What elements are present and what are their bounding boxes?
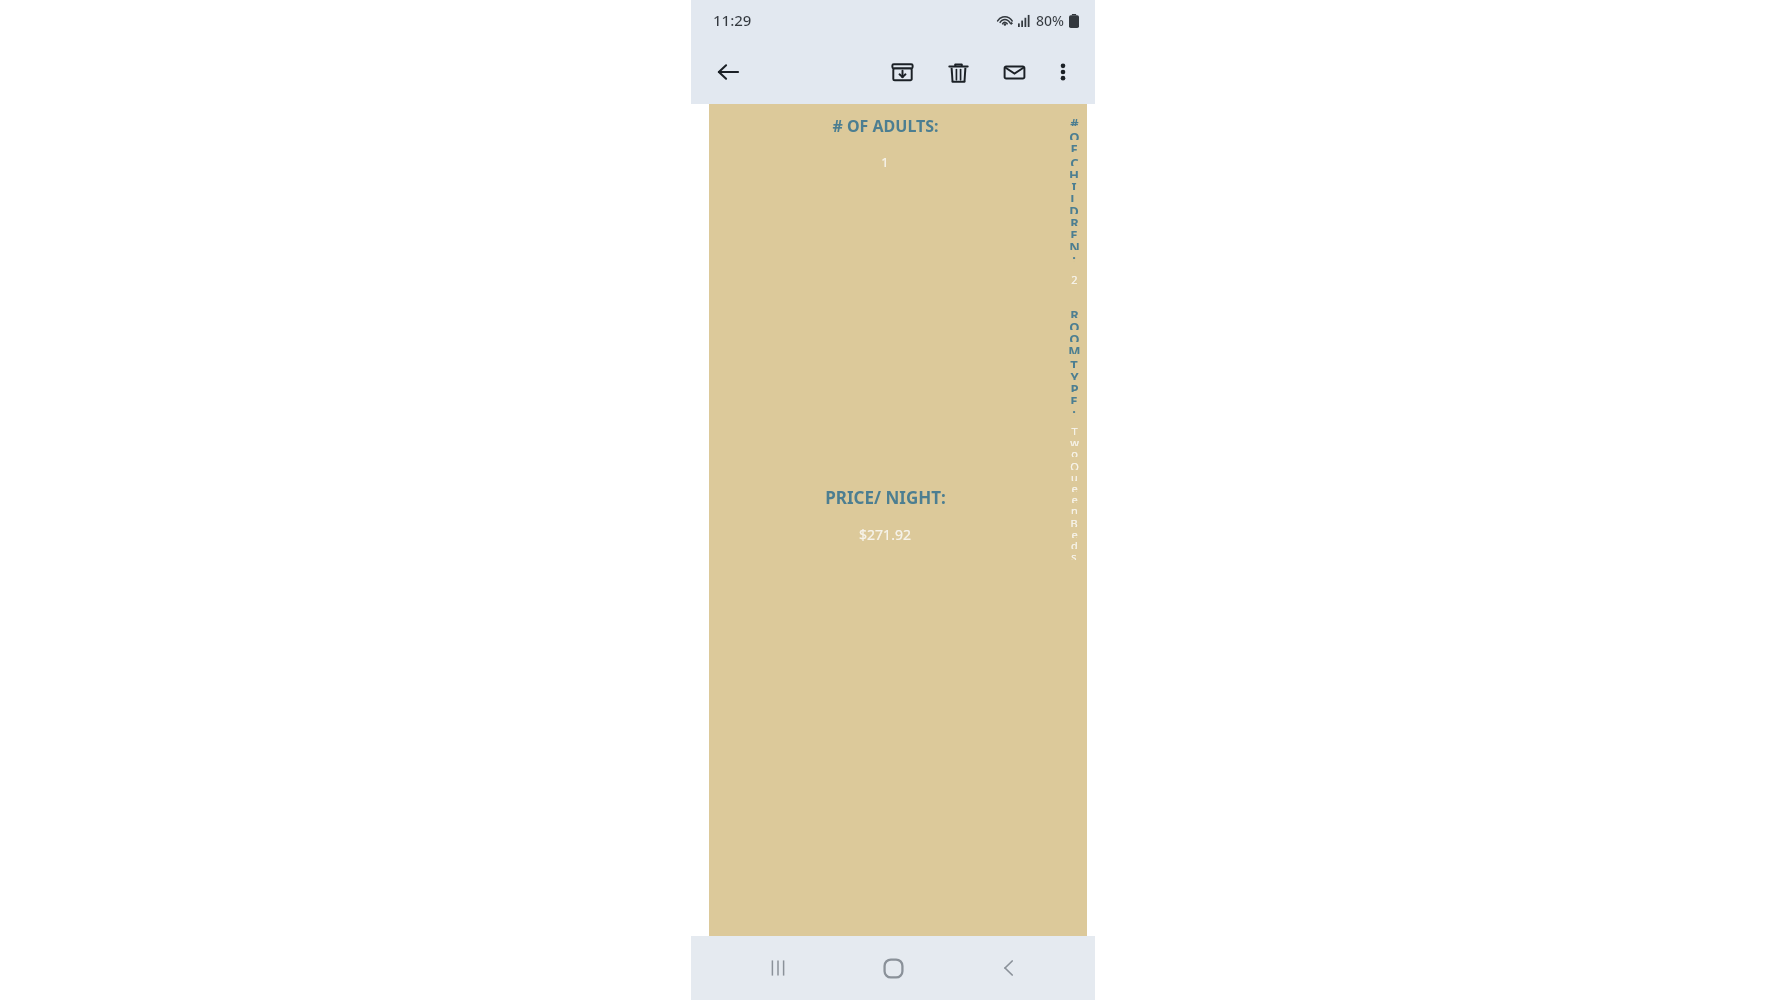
staticText: 80% <box>1036 11 1064 30</box>
staticText: D <box>1069 202 1079 214</box>
staticText: B <box>1070 516 1078 527</box>
staticText: T <box>1070 356 1078 368</box>
staticText: T <box>1071 424 1078 435</box>
staticText: Q <box>1070 459 1079 470</box>
button[interactable]: Home <box>864 939 922 997</box>
button[interactable]: Recent apps <box>749 939 807 997</box>
staticText: : <box>1072 250 1076 262</box>
staticText: e <box>1071 481 1078 492</box>
staticText: e <box>1071 527 1078 538</box>
button[interactable]: Delete <box>935 49 981 95</box>
staticText: H <box>1069 166 1079 178</box>
staticText: P <box>1070 380 1079 392</box>
staticText: 2 <box>1071 272 1078 284</box>
staticText: I <box>1071 178 1077 190</box>
staticText: F <box>1070 140 1078 152</box>
staticText: N <box>1069 238 1080 250</box>
staticText: Y <box>1070 368 1079 380</box>
staticText: C <box>1070 154 1079 166</box>
staticText: # <box>1070 114 1079 126</box>
staticText: # OF ADULTS: <box>832 115 939 137</box>
staticText: $271.92 <box>859 525 911 544</box>
staticText: s <box>1071 549 1077 560</box>
staticText: E <box>1070 392 1078 404</box>
staticText: u <box>1071 470 1078 481</box>
button[interactable]: Archive <box>879 49 925 95</box>
staticText: w <box>1070 435 1079 446</box>
staticText: e <box>1071 492 1078 503</box>
staticText: n <box>1071 503 1078 514</box>
staticText: M <box>1068 342 1081 354</box>
button[interactable]: More options <box>1041 50 1085 94</box>
staticText: PRICE/ NIGHT: <box>825 486 946 509</box>
staticText: O <box>1069 128 1080 140</box>
staticText: 1 <box>881 153 889 171</box>
button[interactable]: Back <box>980 939 1038 997</box>
staticText: L <box>1070 190 1078 202</box>
staticText: O <box>1069 318 1080 330</box>
staticText: o <box>1071 446 1078 457</box>
button[interactable]: Back <box>705 49 751 95</box>
staticText: : <box>1072 404 1076 416</box>
staticText: d <box>1071 538 1078 549</box>
staticText: R <box>1070 306 1079 318</box>
button[interactable]: Mark as unread <box>991 49 1037 95</box>
staticText: O <box>1069 330 1080 342</box>
staticText: R <box>1070 214 1079 226</box>
staticText: 11:29 <box>713 10 752 30</box>
staticText: E <box>1070 226 1078 238</box>
